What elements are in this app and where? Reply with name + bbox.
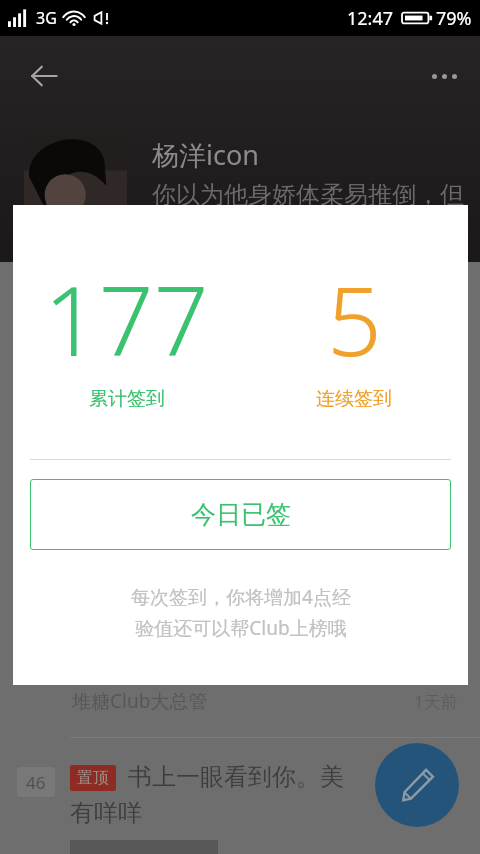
staticText: 堆糖Club大总管 bbox=[72, 688, 208, 714]
button[interactable] bbox=[24, 130, 127, 220]
staticText: 46 bbox=[26, 771, 46, 794]
button[interactable]: 今日已签 bbox=[30, 479, 451, 550]
staticText: 今日已签 bbox=[191, 499, 291, 530]
staticText: 3G bbox=[36, 7, 57, 29]
button[interactable]: Compose bbox=[375, 743, 459, 827]
staticText: 书上一眼看到你。美 bbox=[128, 762, 344, 792]
staticText: 置顶 bbox=[77, 768, 109, 788]
staticText: 杨洋icon bbox=[152, 136, 259, 173]
button[interactable]: More options bbox=[420, 52, 468, 100]
staticText: 12:47 bbox=[347, 6, 394, 31]
staticText: 你以为他身娇体柔易推倒，但 bbox=[152, 180, 464, 210]
staticText: 每次签到，你将增加4点经 验值还可以帮Club上榜哦 bbox=[131, 584, 351, 640]
staticText: 连续签到 bbox=[316, 387, 392, 411]
staticText: 1天前 bbox=[414, 690, 458, 713]
staticText: 累计签到 bbox=[89, 387, 165, 411]
staticText: 5 bbox=[327, 253, 382, 373]
button[interactable]: Back bbox=[18, 50, 70, 102]
staticText: 有咩咩 bbox=[70, 798, 142, 828]
staticText: 177 bbox=[44, 253, 209, 373]
staticText: 79% bbox=[436, 6, 472, 31]
